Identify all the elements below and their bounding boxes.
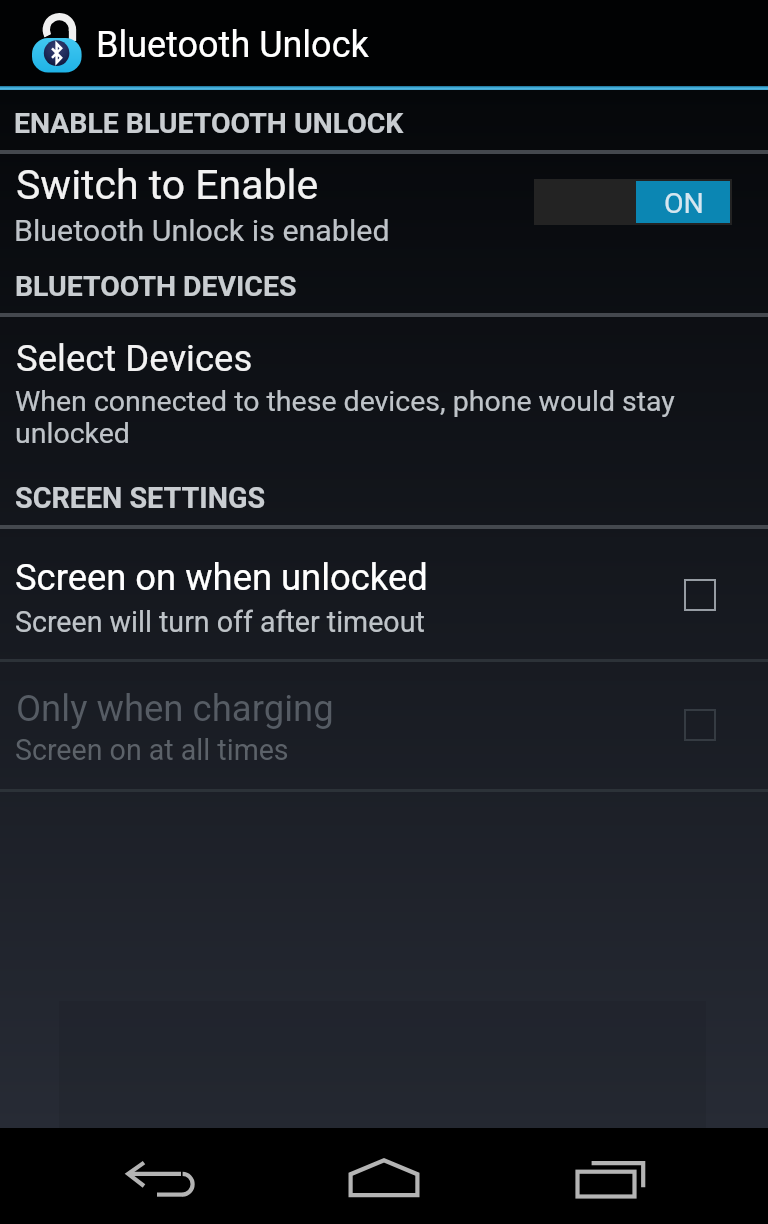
staticText: Screen will turn off after timeout [15,605,755,639]
button[interactable]: Home [256,1128,512,1224]
button[interactable] [0,528,768,659]
staticText: Screen on at all times [15,733,755,767]
staticText: ON [664,187,704,220]
button[interactable]: Back [0,1128,256,1224]
button[interactable]: Recent apps [512,1128,768,1224]
staticText: BLUETOOTH DEVICES [15,270,755,303]
button[interactable]: Toggle option [684,709,716,741]
button[interactable]: Toggle Bluetooth Unlock [534,179,732,225]
staticText: Select Devices [16,337,756,380]
staticText: ENABLE BLUETOOTH UNLOCK [14,107,754,140]
staticText: Bluetooth Unlock is enabled [14,213,754,249]
staticText: Only when charging [16,687,756,730]
staticText: Screen on when unlocked [15,556,755,599]
staticText: Bluetooth Unlock [96,24,768,66]
button[interactable] [0,316,768,466]
staticText: Switch to Enable [16,161,756,209]
button[interactable] [0,661,768,789]
button[interactable] [0,153,768,255]
staticText: When connected to these devices, phone w… [15,385,695,449]
button[interactable]: Toggle option [684,579,716,611]
staticText: SCREEN SETTINGS [15,481,755,515]
